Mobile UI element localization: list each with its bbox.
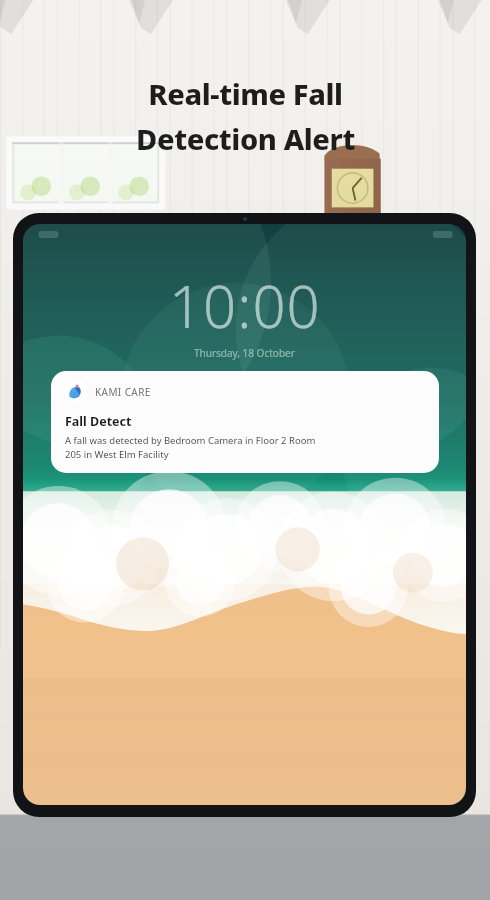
staticText: KAMI CARE	[95, 385, 151, 399]
staticText: Fall Detect	[65, 413, 132, 430]
staticText: A fall was detected by Bedroom Camera in…	[65, 434, 316, 461]
staticText: 10:00	[169, 266, 321, 345]
staticText: Detection Alert	[136, 119, 355, 158]
staticText: Real-time Fall	[148, 74, 343, 113]
other: Kami Care app icon	[65, 382, 85, 402]
button[interactable]: Kami Care app icon	[51, 371, 439, 473]
staticText: Thursday, 18 October	[194, 346, 295, 360]
